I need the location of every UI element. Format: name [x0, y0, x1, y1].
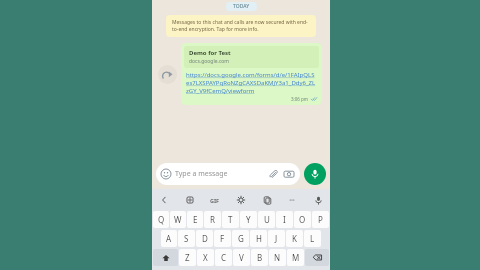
button[interactable]: R [204, 211, 221, 228]
staticText: J [275, 233, 278, 244]
staticText: E [193, 214, 198, 225]
button[interactable]: C [215, 249, 232, 266]
staticText: P [318, 214, 323, 225]
button[interactable]: Q [153, 211, 169, 228]
button[interactable]: Backspace [305, 249, 329, 266]
staticText: GIF [210, 197, 220, 204]
button[interactable]: Type a message [156, 163, 300, 185]
staticText: C [221, 252, 227, 263]
staticText: https://docs.google.com/forms/d/e/1FAIpQ… [186, 71, 317, 95]
button[interactable]: G [232, 230, 249, 247]
button[interactable]: Stickers [183, 193, 197, 207]
button[interactable]: Voice message [304, 163, 326, 185]
staticText: M [292, 252, 300, 263]
button[interactable]: V [233, 249, 250, 266]
button[interactable]: F [214, 230, 231, 247]
button[interactable]: Camera [283, 168, 295, 180]
button[interactable]: Z [179, 249, 196, 266]
staticText: X [203, 252, 208, 263]
button[interactable]: Attach [267, 168, 279, 180]
button[interactable]: Y [240, 211, 257, 228]
button[interactable]: S [178, 230, 195, 247]
staticText: Demo for Test [189, 49, 231, 57]
button[interactable]: H [250, 230, 267, 247]
staticText: W [174, 214, 182, 225]
staticText: Z [185, 252, 190, 263]
staticText: U [264, 214, 270, 225]
staticText: TODAY [233, 3, 250, 10]
staticText: T [228, 214, 233, 225]
staticText: V [239, 252, 244, 263]
button[interactable]: Clipboard [260, 193, 274, 207]
button[interactable]: Messages to this chat and calls are now … [166, 15, 316, 37]
staticText: L [310, 233, 315, 244]
staticText: Messages to this chat and calls are now … [172, 19, 310, 33]
staticText: D [202, 233, 208, 244]
staticText: Y [246, 214, 251, 225]
staticText: S [184, 233, 189, 244]
button[interactable]: X [197, 249, 214, 266]
staticText: A [166, 233, 172, 244]
staticText: H [256, 233, 262, 244]
button[interactable]: Voice input [311, 193, 325, 207]
button[interactable]: GIF [208, 193, 222, 207]
staticText: R [210, 214, 215, 225]
staticText: Q [158, 214, 165, 225]
button[interactable]: U [258, 211, 275, 228]
button[interactable]: M [287, 249, 304, 266]
button[interactable]: Forward message [158, 65, 177, 84]
button[interactable]: Shift [153, 249, 178, 266]
button[interactable]: L [304, 230, 321, 247]
staticText: I [283, 214, 286, 225]
button[interactable]: Settings [234, 193, 248, 207]
button[interactable]: P [312, 211, 329, 228]
button[interactable]: Back [157, 193, 171, 207]
button[interactable]: Demo for Test [181, 43, 322, 105]
button[interactable]: B [251, 249, 268, 266]
staticText: O [299, 214, 306, 225]
staticText: G [238, 233, 244, 244]
button[interactable]: J [268, 230, 285, 247]
button[interactable]: N [269, 249, 286, 266]
button[interactable]: More options [285, 193, 299, 207]
button[interactable]: T [222, 211, 239, 228]
staticText: Type a message [175, 169, 228, 179]
staticText: 3:06 pm [291, 96, 309, 102]
staticText: docs.google.com [189, 58, 229, 65]
button[interactable]: K [286, 230, 303, 247]
button[interactable]: W [170, 211, 186, 228]
staticText: B [257, 252, 263, 263]
staticText: N [274, 252, 281, 263]
button[interactable]: E [187, 211, 203, 228]
button[interactable]: D [196, 230, 213, 247]
staticText: F [220, 233, 225, 244]
button[interactable]: O [294, 211, 311, 228]
button[interactable]: A [161, 230, 177, 247]
staticText: K [292, 233, 297, 244]
button[interactable]: I [276, 211, 293, 228]
